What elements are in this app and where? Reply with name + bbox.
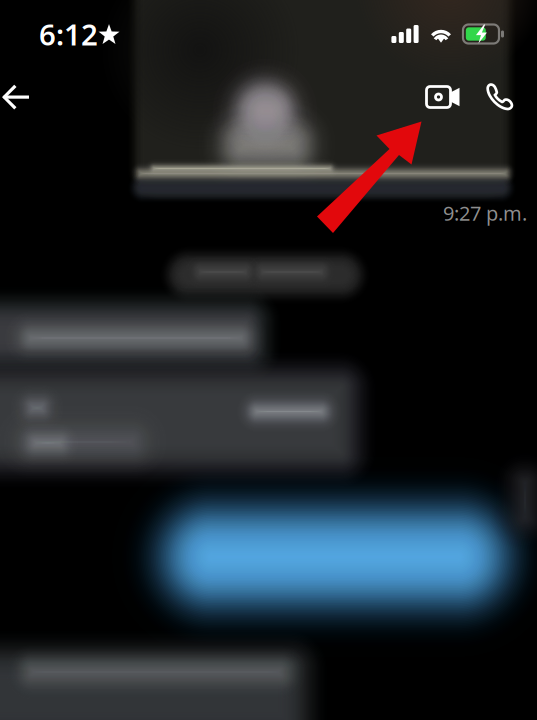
button[interactable]: Video call: [413, 70, 473, 124]
staticText: 6:12: [39, 14, 98, 53]
staticText: 9:27 p.m.: [443, 200, 527, 226]
button[interactable]: Back: [0, 70, 41, 124]
button[interactable]: Voice call: [473, 70, 527, 124]
